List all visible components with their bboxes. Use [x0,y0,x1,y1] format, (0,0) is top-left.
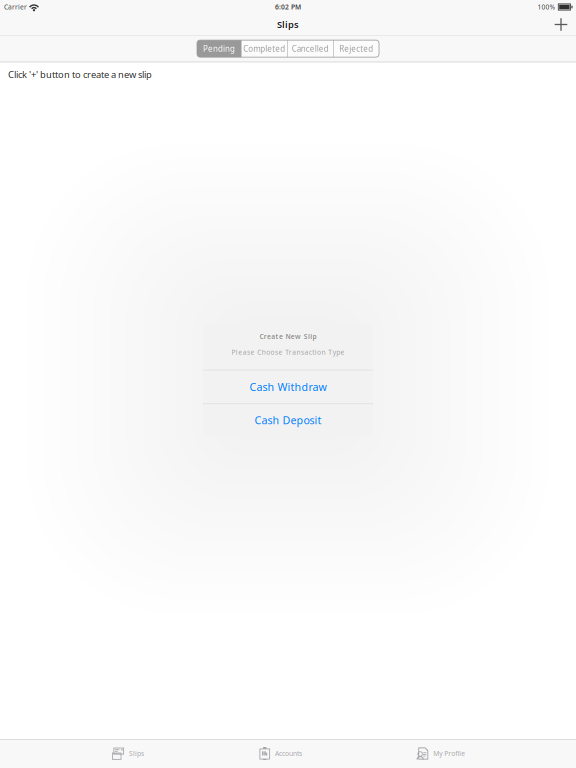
staticText: Click '+' button to create a new slip [8,68,152,80]
staticText: Accounts [275,749,302,758]
staticText: Create New Slip [259,332,317,341]
staticText: Pending [203,43,235,54]
staticText: Completed [243,43,285,54]
button[interactable]: Pending [197,40,241,57]
button[interactable]: Cash Withdraw [203,370,373,403]
button[interactable]: My Profile [337,739,544,768]
staticText: 100% [537,3,555,11]
button[interactable]: Completed [242,40,287,57]
staticText: Cash Deposit [254,413,321,427]
staticText: Cash Withdraw [249,380,326,394]
staticText: My Profile [433,749,465,758]
staticText: Carrier [4,3,27,11]
staticText: 6:02 PM [275,3,301,11]
button[interactable]: Cash Deposit [203,404,373,436]
staticText: Please Choose Transaction Type [231,348,345,357]
button[interactable]: Add new slip [547,14,575,35]
staticText: Cancelled [292,43,329,54]
staticText: Rejected [339,43,373,54]
button[interactable]: Rejected [334,40,379,57]
button[interactable]: Cancelled [288,40,333,57]
staticText: Slips [129,749,144,758]
button[interactable]: Slips [32,739,224,768]
button[interactable]: Accounts [224,739,337,768]
staticText: Slips [277,18,299,31]
